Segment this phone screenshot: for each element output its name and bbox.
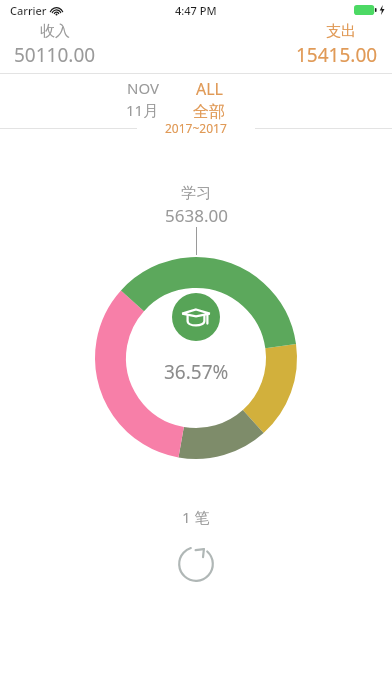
- staticText: 学习: [181, 184, 211, 203]
- button[interactable]: NOV: [120, 78, 165, 120]
- other: Education: [181, 302, 211, 332]
- staticText: 支出: [326, 22, 356, 41]
- staticText: ALL: [196, 78, 223, 100]
- button[interactable]: ALL: [187, 78, 231, 122]
- staticText: 15415.00: [296, 42, 378, 68]
- button[interactable]: 收入: [0, 22, 196, 68]
- staticText: 36.57%: [164, 359, 229, 385]
- button[interactable]: Study category: [172, 293, 220, 341]
- staticText: 50110.00: [14, 42, 96, 68]
- button[interactable]: Refresh: [171, 539, 221, 589]
- staticText: 2017~2017: [165, 120, 227, 136]
- staticText: 11月: [126, 100, 159, 120]
- staticText: 5638.00: [165, 204, 228, 227]
- staticText: 收入: [40, 22, 70, 41]
- staticText: 全部: [193, 102, 225, 122]
- staticText: Carrier: [10, 3, 47, 18]
- staticText: NOV: [127, 78, 159, 98]
- staticText: 1 笔: [182, 507, 210, 527]
- staticText: 4:47 PM: [175, 3, 217, 18]
- button[interactable]: 支出: [196, 22, 392, 68]
